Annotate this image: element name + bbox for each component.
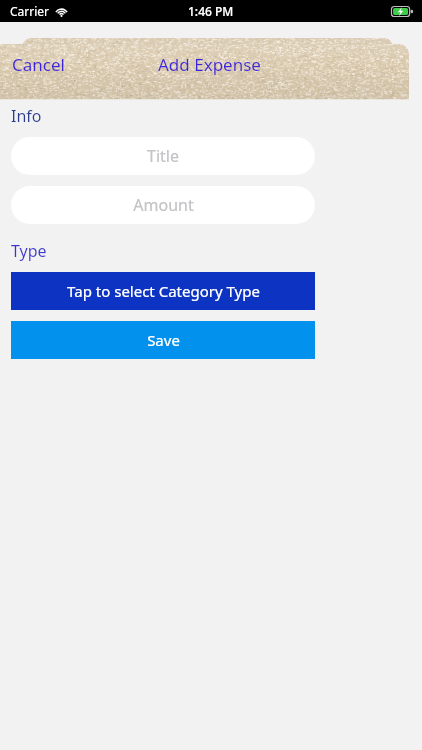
button[interactable]: Cancel [8,51,69,78]
staticText: Cancel [12,53,65,76]
staticText: Info [11,105,42,127]
staticText: Save [147,330,180,350]
button[interactable]: Tap to select Category Type [11,272,315,310]
staticText: Carrier [10,3,50,19]
button[interactable]: Save [11,321,315,359]
button[interactable]: Title [11,137,315,175]
staticText: Type [11,240,47,262]
button[interactable]: Amount [11,186,315,224]
staticText: Tap to select Category Type [67,281,260,301]
staticText: 1:46 PM [188,3,234,19]
staticText: Title [147,145,179,167]
staticText: Amount [133,194,194,216]
staticText: Add Expense [158,53,261,76]
